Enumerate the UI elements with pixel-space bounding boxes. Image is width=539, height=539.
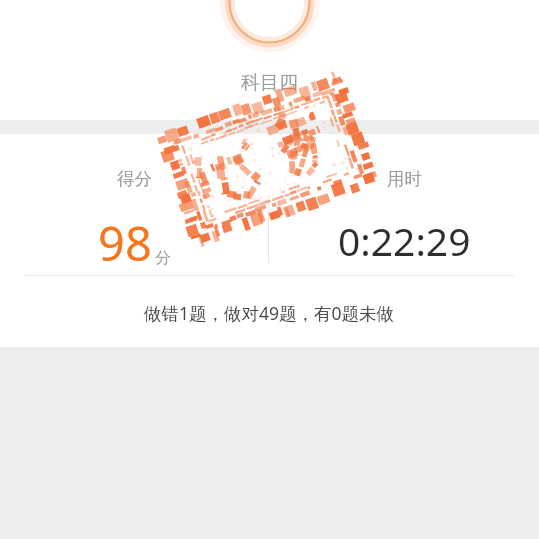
other: Avatar [223, 0, 316, 49]
button[interactable]: 得分 [0, 168, 269, 190]
staticText: 用时 [387, 168, 422, 190]
staticText: 分 [155, 248, 171, 268]
button[interactable]: 用时 [269, 168, 539, 190]
other: Excellent stamp [160, 78, 376, 240]
staticText: 做错1题，做对49题，有0题未做 [144, 301, 395, 325]
staticText: 0:22:29 [338, 214, 471, 267]
staticText: 得分 [117, 168, 152, 190]
staticText: 98 [98, 211, 152, 275]
staticText: 科目四 [241, 71, 298, 95]
